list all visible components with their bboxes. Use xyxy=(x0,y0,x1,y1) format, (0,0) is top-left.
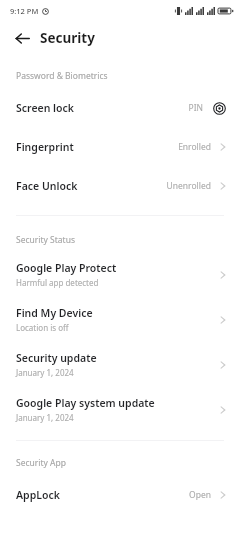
staticText: Face Unlock xyxy=(16,179,78,193)
staticText: Google Play Protect xyxy=(16,261,117,275)
button[interactable]: Google Play Protect xyxy=(0,252,240,297)
button[interactable]: AppLock xyxy=(0,475,240,514)
staticText: Open xyxy=(189,489,211,501)
staticText: Google Play system update xyxy=(16,396,155,410)
staticText: Security xyxy=(40,29,95,47)
button[interactable]: Screen lock xyxy=(0,88,240,127)
staticText: Fingerprint xyxy=(16,140,74,154)
button[interactable]: Security update xyxy=(0,342,240,387)
staticText: January 1, 2024 xyxy=(16,367,74,378)
button[interactable]: Back xyxy=(8,24,36,52)
button[interactable]: Face Unlock xyxy=(0,166,240,205)
staticText: PIN xyxy=(188,102,203,114)
staticText: Password & Biometrics xyxy=(16,70,108,82)
staticText: Location is off xyxy=(16,322,69,333)
staticText: Security Status xyxy=(16,234,76,246)
staticText: January 1, 2024 xyxy=(16,412,74,423)
staticText: Screen lock xyxy=(16,101,75,115)
staticText: Unenrolled xyxy=(166,180,211,192)
button[interactable]: Find My Device xyxy=(0,297,240,342)
staticText: Security update xyxy=(16,351,97,365)
button[interactable]: Screen lock settings xyxy=(210,99,228,117)
staticText: Harmful app detected xyxy=(16,277,99,288)
staticText: Security App xyxy=(16,457,66,469)
button[interactable]: Fingerprint xyxy=(0,127,240,166)
staticText: Find My Device xyxy=(16,306,93,320)
staticText: AppLock xyxy=(16,488,60,502)
staticText: 9:12 PM xyxy=(10,6,39,16)
staticText: Enrolled xyxy=(178,141,211,153)
button[interactable]: Google Play system update xyxy=(0,387,240,432)
